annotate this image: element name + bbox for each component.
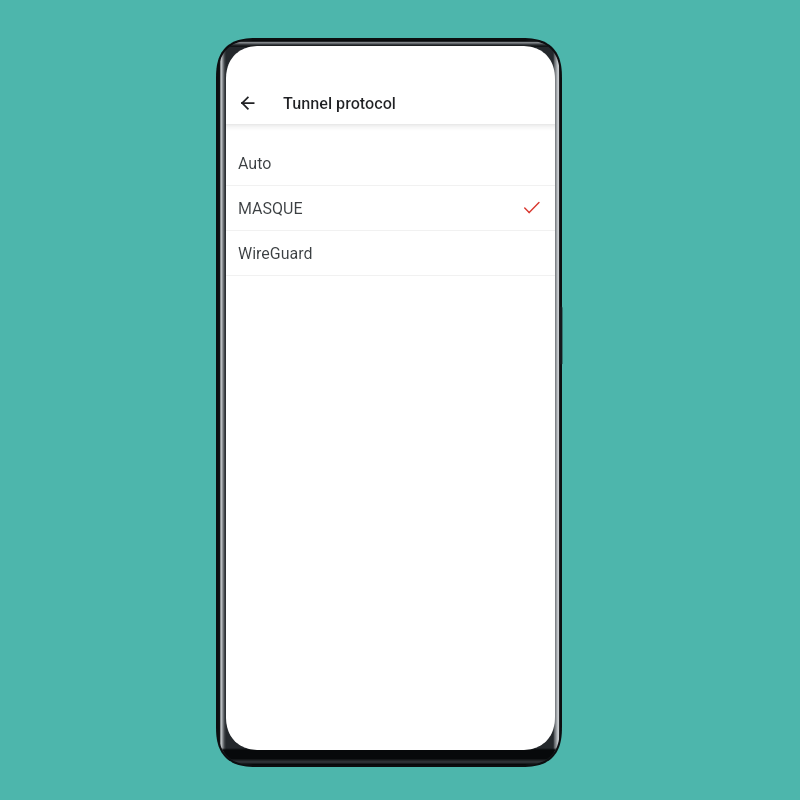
staticText: MASQUE bbox=[238, 199, 303, 218]
button[interactable]: Auto bbox=[226, 141, 555, 185]
button[interactable]: Back bbox=[226, 79, 273, 127]
button[interactable]: MASQUE bbox=[226, 186, 555, 230]
staticText: Tunnel protocol bbox=[283, 94, 396, 113]
button[interactable]: WireGuard bbox=[226, 231, 555, 275]
staticText: WireGuard bbox=[238, 244, 313, 263]
staticText: Auto bbox=[238, 154, 272, 173]
